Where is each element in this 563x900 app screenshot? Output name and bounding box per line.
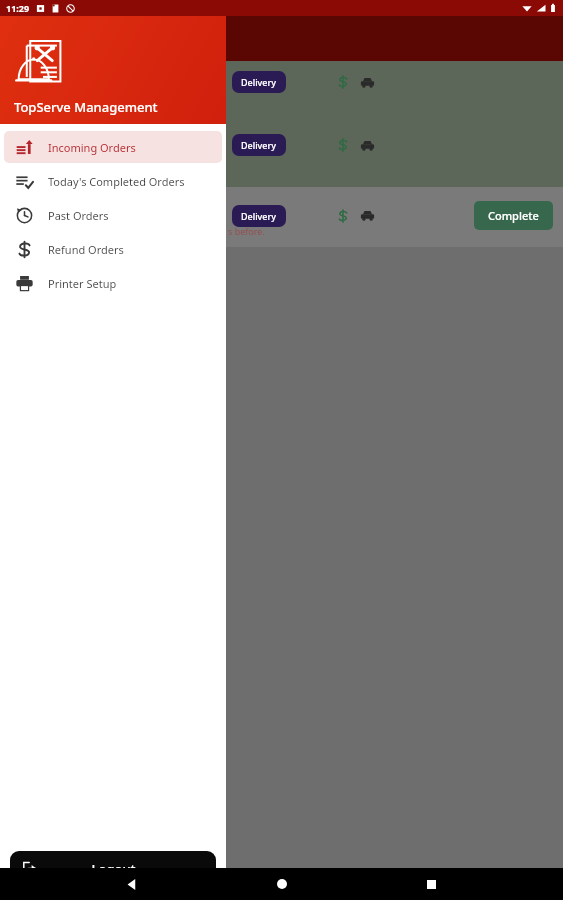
staticText: Delivery [241,76,277,88]
staticText: Incoming Orders [48,140,136,155]
staticText: Today's Completed Orders [48,174,185,189]
staticText: Complete [488,208,539,223]
staticText: Delivery [241,139,277,151]
staticText: TopServe Management [14,98,158,116]
button[interactable]: Incoming Orders [4,131,222,163]
staticText: Logout [91,860,136,878]
staticText: s before. [228,225,265,237]
button[interactable]: Back [114,868,150,900]
staticText: Refund Orders [48,242,124,257]
button[interactable]: Recent apps [413,868,449,900]
staticText: Past Orders [48,208,109,223]
staticText: Delivery [241,210,277,222]
button[interactable]: Complete [474,201,553,230]
staticText: 11:29 [6,2,30,14]
button[interactable]: Delivery [232,205,286,227]
staticText: Printer Setup [48,276,117,291]
button[interactable]: Home [264,868,300,900]
button[interactable]: Today's Completed Orders [4,165,222,197]
button[interactable]: Delivery [232,71,286,93]
button[interactable]: Refund Orders [4,233,222,265]
button[interactable]: Delivery [232,134,286,156]
button[interactable]: Logout [10,851,216,886]
button[interactable]: Printer Setup [4,267,222,299]
button[interactable]: Past Orders [4,199,222,231]
